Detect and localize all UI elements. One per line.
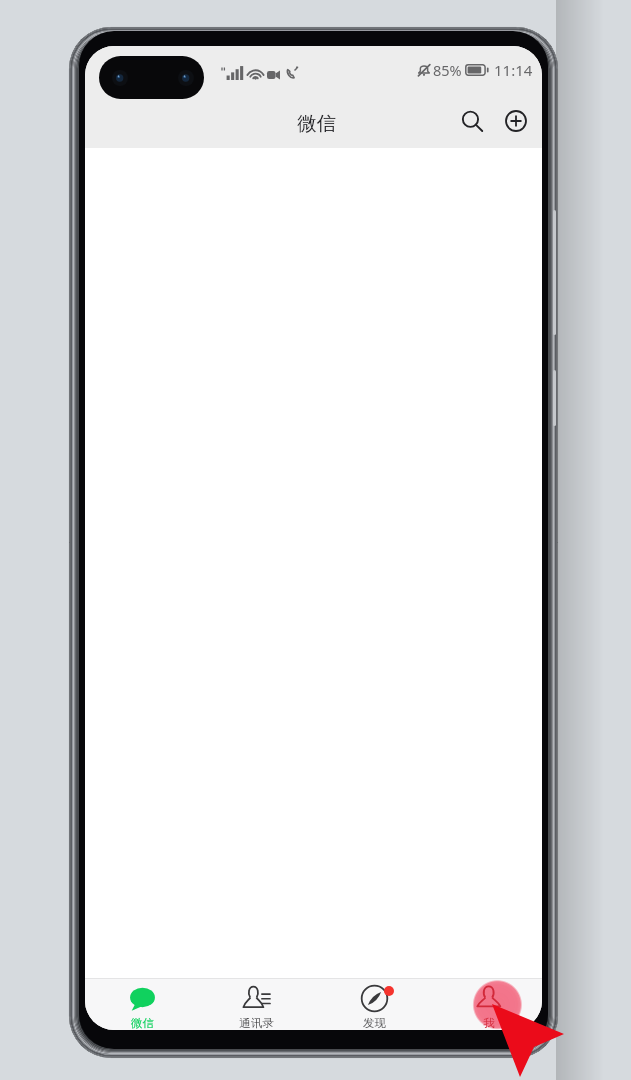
button[interactable]: 我: [451, 978, 527, 1030]
staticText: 通讯录: [239, 1016, 274, 1030]
staticText: 85%: [433, 60, 462, 80]
staticText: 微信: [297, 111, 336, 136]
staticText: 11:14: [494, 60, 533, 80]
staticText: 我: [483, 1016, 495, 1030]
staticText: 发现: [363, 1016, 386, 1030]
button[interactable]: 微信: [104, 978, 180, 1030]
staticText: 微信: [131, 1016, 154, 1030]
button[interactable]: 通讯录: [218, 978, 294, 1030]
button[interactable]: Add: [496, 101, 536, 141]
button[interactable]: Search: [452, 101, 492, 141]
button[interactable]: 发现: [336, 978, 412, 1030]
